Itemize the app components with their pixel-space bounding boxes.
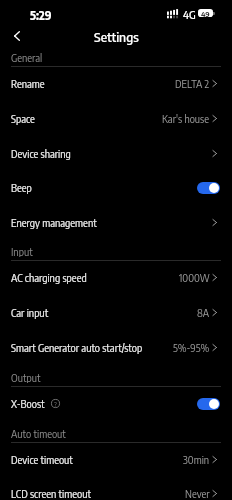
- staticText: Smart Generator auto start/stop: [11, 342, 143, 354]
- button[interactable]: AC charging speed: [0, 260, 232, 295]
- staticText: Kar's house: [162, 113, 210, 125]
- button[interactable]: Device timeout: [0, 442, 232, 477]
- button[interactable]: X-Boost: [0, 386, 232, 421]
- staticText: 49: [201, 9, 210, 17]
- staticText: Output: [11, 372, 41, 383]
- staticText: Never: [185, 488, 210, 500]
- staticText: Beep: [11, 182, 32, 194]
- staticText: X-Boost: [11, 398, 45, 410]
- button[interactable]: Device sharing: [0, 136, 232, 171]
- staticText: Input: [11, 246, 33, 257]
- staticText: LCD screen timeout: [11, 488, 91, 500]
- button[interactable]: Beep: [0, 170, 232, 205]
- staticText: 5%-95%: [173, 342, 210, 354]
- staticText: Auto timeout: [11, 428, 66, 439]
- button[interactable]: Space: [0, 101, 232, 136]
- button[interactable]: Rename: [0, 66, 232, 101]
- button[interactable]: Back: [4, 23, 30, 49]
- staticText: AC charging speed: [11, 272, 87, 284]
- staticText: Rename: [11, 78, 45, 90]
- button[interactable]: Energy management: [0, 205, 232, 240]
- staticText: DELTA 2: [175, 78, 210, 90]
- staticText: 30min: [183, 454, 210, 466]
- button[interactable]: LCD screen timeout: [0, 476, 232, 500]
- staticText: Settings: [94, 29, 139, 45]
- staticText: 5:29: [30, 8, 52, 22]
- staticText: 1000W: [179, 272, 210, 284]
- staticText: Energy management: [11, 217, 97, 229]
- staticText: Device timeout: [11, 454, 73, 466]
- staticText: Space: [11, 113, 35, 125]
- button[interactable]: Car input: [0, 295, 232, 330]
- button[interactable]: Smart Generator auto start/stop: [0, 330, 232, 365]
- staticText: 8A: [197, 307, 210, 319]
- staticText: Car input: [11, 307, 49, 319]
- staticText: Device sharing: [11, 148, 71, 160]
- staticText: 4G: [183, 8, 196, 21]
- staticText: ?: [54, 400, 57, 408]
- staticText: General: [11, 52, 43, 63]
